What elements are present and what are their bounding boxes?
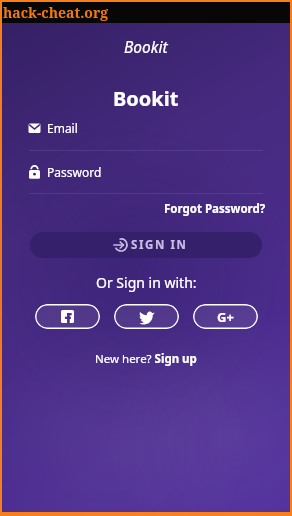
- staticText: Or Sign in with:: [96, 273, 197, 292]
- staticText: Email: [47, 120, 78, 136]
- staticText: hack-cheat.org: [3, 3, 109, 22]
- button[interactable]: Password: [28, 164, 264, 180]
- staticText: Bookit: [124, 36, 168, 57]
- button[interactable]: Forgot Password?: [164, 201, 266, 217]
- button[interactable]: SIGN IN: [30, 232, 262, 258]
- staticText: Password: [47, 164, 102, 180]
- button[interactable]: Email: [28, 120, 264, 136]
- staticText: SIGN IN: [131, 237, 188, 253]
- button[interactable]: G+: [193, 304, 258, 329]
- button[interactable]: [114, 304, 179, 329]
- staticText: G+: [217, 308, 234, 326]
- button[interactable]: [35, 304, 100, 329]
- staticText: Bookit: [113, 85, 179, 112]
- button[interactable]: New here? Sign up: [95, 351, 197, 367]
